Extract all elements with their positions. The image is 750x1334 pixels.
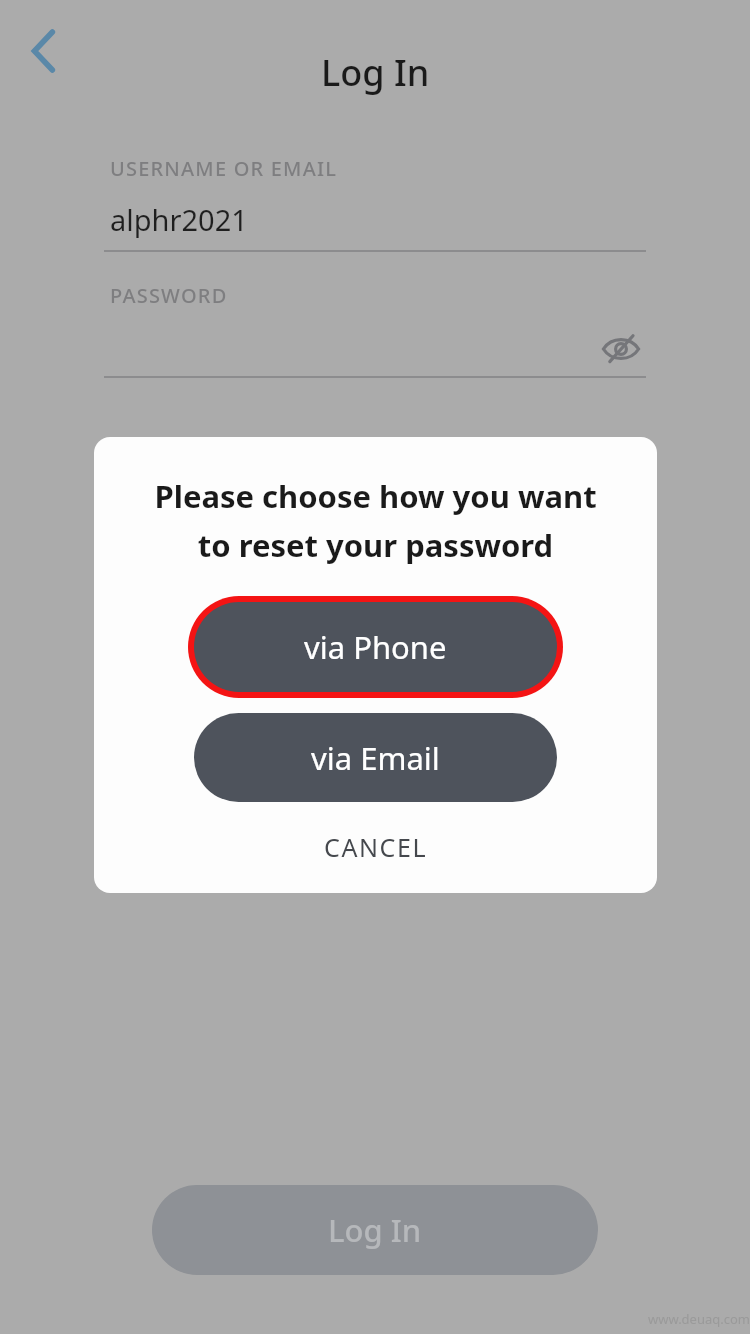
button[interactable]: via Email xyxy=(194,713,557,802)
staticText: Please choose how you want to reset your… xyxy=(154,475,597,567)
staticText: alphr2021 xyxy=(110,200,248,239)
button[interactable]: CANCEL xyxy=(94,816,657,878)
staticText: Log In xyxy=(328,1209,422,1251)
staticText: via Email xyxy=(311,737,440,779)
button[interactable]: Log In xyxy=(152,1185,598,1275)
staticText: www.deuaq.com xyxy=(648,1310,750,1328)
staticText: USERNAME OR EMAIL xyxy=(110,155,338,182)
staticText: CANCEL xyxy=(324,830,428,864)
staticText: via Phone xyxy=(304,626,447,668)
button[interactable]: Show password xyxy=(592,322,650,376)
button[interactable]: Back xyxy=(12,20,76,82)
staticText: PASSWORD xyxy=(110,282,228,309)
staticText: Log In xyxy=(321,48,430,97)
button[interactable]: via Phone xyxy=(188,596,563,698)
